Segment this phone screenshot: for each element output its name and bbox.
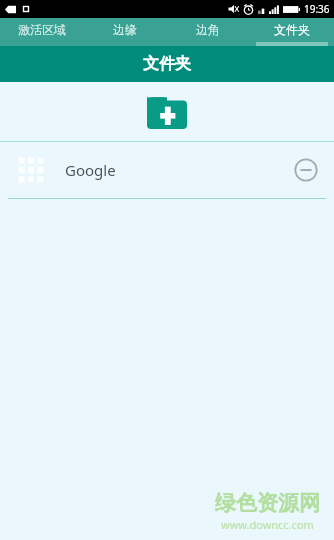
staticText: 19:36	[304, 2, 330, 16]
staticText: 文件夹	[143, 54, 191, 74]
staticText: 边角	[196, 22, 220, 37]
button[interactable]: Remove folder	[286, 150, 326, 190]
button[interactable]: 激活区域	[0, 18, 83, 46]
staticText: 边缘	[113, 22, 137, 37]
button[interactable]: 边角	[166, 18, 250, 46]
staticText: 激活区域	[18, 22, 66, 37]
button[interactable]: Google	[0, 142, 334, 198]
button[interactable]: Add folder	[144, 93, 190, 131]
button[interactable]: 边缘	[83, 18, 166, 46]
staticText: Google	[65, 160, 116, 180]
staticText: www.downcc.com	[221, 517, 314, 532]
button[interactable]: 文件夹	[250, 18, 334, 46]
staticText: 绿色资源网	[215, 490, 320, 516]
staticText: 文件夹	[274, 22, 310, 37]
